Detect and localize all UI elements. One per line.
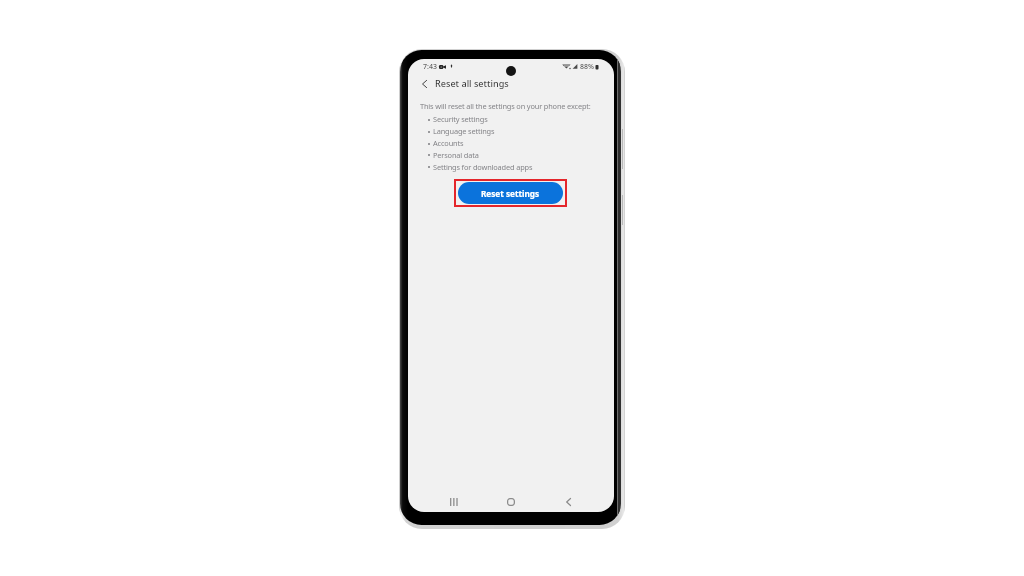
staticText: Language settings	[433, 126, 495, 136]
staticText: Security settings	[433, 114, 488, 124]
staticText: Personal data	[433, 150, 479, 160]
staticText: 7:43	[423, 62, 437, 72]
staticText: This will reset all the settings on your…	[420, 101, 591, 111]
button[interactable]: Home	[492, 491, 530, 512]
staticText: 88%	[580, 62, 594, 72]
button[interactable]: Reset settings	[458, 182, 563, 204]
staticText: Settings for downloaded apps	[433, 162, 533, 172]
button[interactable]: Back	[417, 77, 431, 91]
staticText: Reset settings	[481, 188, 540, 199]
button[interactable]: Recent apps	[434, 491, 472, 512]
button[interactable]: Back	[549, 491, 587, 512]
staticText: Accounts	[433, 138, 464, 148]
staticText: Reset all settings	[435, 77, 509, 89]
